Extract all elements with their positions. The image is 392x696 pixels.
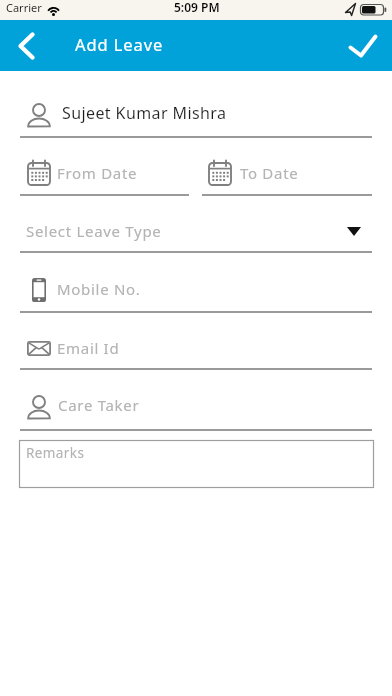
staticText: Remarks xyxy=(26,444,85,462)
staticText: Add Leave xyxy=(75,33,164,55)
button[interactable]: To Date xyxy=(202,158,372,196)
staticText: Select Leave Type xyxy=(26,221,162,241)
button[interactable]: Care Taker xyxy=(19,392,372,428)
staticText: Mobile No. xyxy=(57,279,141,299)
staticText: Care Taker xyxy=(58,395,140,415)
staticText: Sujeet Kumar Mishra xyxy=(62,102,227,124)
button[interactable]: Mobile No. xyxy=(19,272,372,310)
button[interactable]: Select Leave Type xyxy=(19,215,372,251)
staticText: Carrier xyxy=(6,0,42,15)
staticText: 5:09 PM xyxy=(174,0,220,15)
staticText: From Date xyxy=(57,163,138,183)
button[interactable] xyxy=(4,22,48,69)
button[interactable]: Remarks xyxy=(19,440,374,488)
staticText: To Date xyxy=(240,163,299,183)
button[interactable]: Sujeet Kumar Mishra xyxy=(19,96,372,138)
button[interactable]: Email Id xyxy=(19,332,372,367)
button[interactable]: From Date xyxy=(19,158,189,196)
button[interactable] xyxy=(338,22,388,69)
staticText: Email Id xyxy=(57,338,120,358)
